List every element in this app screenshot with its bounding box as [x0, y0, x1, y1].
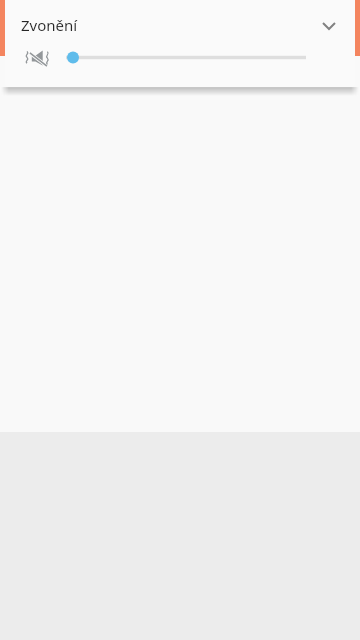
staticText: Zvonění: [21, 15, 78, 35]
button[interactable]: Zvonění: [5, 0, 355, 48]
button[interactable]: Collapse: [307, 4, 351, 48]
button[interactable]: [60, 48, 315, 70]
